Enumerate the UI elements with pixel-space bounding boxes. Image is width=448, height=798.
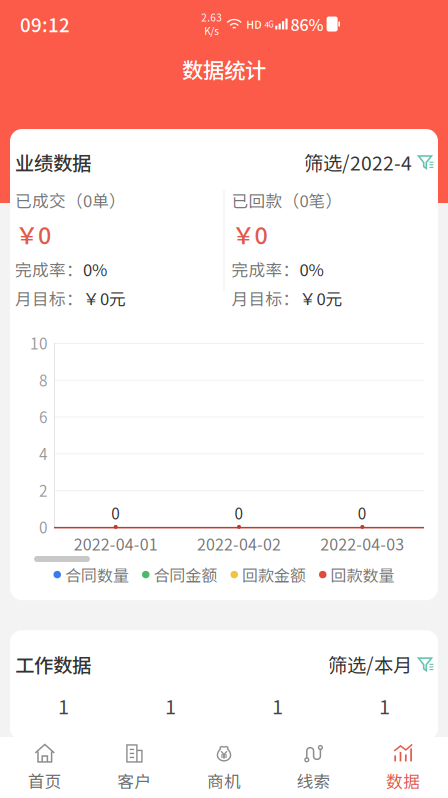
staticText: 首页 (28, 768, 62, 792)
staticText: 8 (39, 369, 48, 391)
staticText: 客户 (117, 768, 151, 792)
button[interactable]: 数据 (358, 737, 448, 798)
staticText: 4 (39, 442, 48, 464)
staticText: 已回款（0笔） (231, 188, 342, 212)
staticText: 0 (111, 502, 120, 524)
staticText: 工作数据 (15, 650, 91, 678)
staticText: K/s (204, 23, 219, 38)
staticText: 已成交（0单） (15, 188, 126, 212)
staticText: 1 (58, 691, 69, 720)
staticText: 筛选/本月 (328, 650, 412, 678)
button[interactable]: 筛选 筛选/2022-4 (304, 148, 435, 176)
staticText: 2022-04-03 (320, 532, 404, 555)
staticText: 86% (291, 12, 324, 36)
staticText: 月目标： (15, 286, 83, 310)
staticText: 4G (264, 18, 274, 30)
staticText: 回款数量 (330, 563, 394, 586)
staticText: ￥0元 (299, 286, 342, 310)
staticText: 2022-04-02 (197, 532, 281, 555)
staticText: 1 (379, 691, 390, 720)
staticText: 商机 (207, 768, 241, 792)
staticText: 完成率： (15, 257, 83, 281)
staticText: 0 (39, 516, 48, 538)
staticText: 数据 (386, 768, 420, 792)
staticText: 09:12 (20, 10, 70, 37)
staticText: ￥0元 (83, 286, 126, 310)
staticText: 0 (234, 502, 243, 524)
staticText: 合同金额 (153, 563, 217, 586)
staticText: ￥0 (15, 217, 51, 251)
button[interactable]: 筛选 筛选/本月 (328, 650, 435, 678)
staticText: HD (246, 16, 261, 32)
staticText: 线索 (297, 768, 331, 792)
staticText: 2.63 (201, 10, 222, 24)
staticText: 6 (39, 405, 48, 428)
staticText: 2 (39, 479, 48, 501)
staticText: 0% (83, 257, 107, 281)
staticText: 完成率： (231, 257, 299, 281)
staticText: 合同数量 (65, 563, 129, 586)
button[interactable]: 线索 (269, 737, 358, 798)
staticText: 0% (299, 257, 323, 281)
staticText: 1 (272, 691, 283, 720)
staticText: 10 (30, 332, 48, 354)
staticText: ￥0 (231, 217, 267, 251)
staticText: 2022-04-01 (74, 532, 158, 555)
button[interactable]: 商机 (179, 737, 269, 798)
staticText: 1 (165, 691, 176, 720)
staticText: 业绩数据 (15, 148, 91, 176)
staticText: 0 (358, 502, 367, 524)
staticText: 回款金额 (242, 563, 306, 586)
staticText: 月目标： (231, 286, 299, 310)
button[interactable]: 客户 (90, 737, 179, 798)
staticText: 筛选/2022-4 (304, 148, 412, 176)
button[interactable]: 首页 (0, 737, 90, 798)
staticText: 数据统计 (182, 54, 266, 84)
